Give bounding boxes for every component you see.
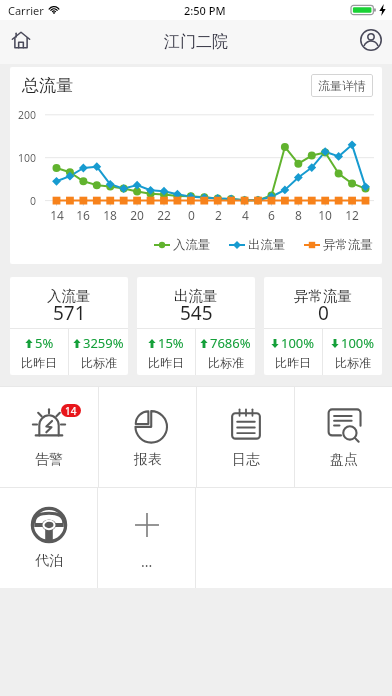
button[interactable]: Profile bbox=[350, 19, 392, 61]
button[interactable]: 流量详情 bbox=[311, 74, 373, 97]
staticText: 入流量 bbox=[173, 237, 211, 253]
staticText: 日志 bbox=[232, 451, 260, 469]
staticText: 江门二院 bbox=[164, 32, 228, 52]
staticText: 571 bbox=[53, 300, 86, 326]
button[interactable]: 14 bbox=[0, 387, 98, 487]
staticText: 20 bbox=[130, 207, 144, 223]
staticText: 报表 bbox=[134, 451, 162, 469]
staticText: 出流量 bbox=[174, 287, 218, 305]
staticText: 总流量 bbox=[22, 75, 73, 96]
staticText: 6 bbox=[268, 207, 275, 223]
staticText: 2:50 PM bbox=[184, 3, 226, 18]
staticText: 入流量 bbox=[47, 287, 91, 305]
staticText: 18 bbox=[103, 207, 117, 223]
button[interactable]: Home bbox=[0, 19, 42, 61]
staticText: 0 bbox=[30, 194, 37, 208]
staticText: 比标准 bbox=[335, 355, 371, 370]
staticText: 0 bbox=[318, 300, 329, 326]
staticText: 比标准 bbox=[81, 355, 117, 370]
staticText: 545 bbox=[180, 300, 213, 326]
staticText: 盘点 bbox=[330, 451, 358, 469]
staticText: 22 bbox=[157, 207, 171, 223]
staticText: 3259% bbox=[83, 334, 124, 352]
staticText: 流量详情 bbox=[318, 78, 366, 93]
staticText: ... bbox=[141, 552, 153, 571]
staticText: 比标准 bbox=[208, 355, 244, 370]
staticText: 14 bbox=[65, 404, 77, 417]
button[interactable]: 代泊 bbox=[0, 488, 97, 588]
staticText: 4 bbox=[242, 207, 249, 223]
staticText: 异常流量 bbox=[323, 237, 373, 253]
staticText: 比昨日 bbox=[275, 355, 311, 370]
button[interactable]: ... bbox=[98, 488, 195, 588]
staticText: 0 bbox=[188, 207, 195, 223]
staticText: 14 bbox=[50, 207, 64, 223]
staticText: 出流量 bbox=[248, 237, 286, 253]
staticText: 5% bbox=[35, 334, 54, 352]
button[interactable]: 异常流量 bbox=[264, 277, 382, 375]
button[interactable]: 日志 bbox=[197, 387, 294, 487]
staticText: 比昨日 bbox=[148, 355, 184, 370]
button[interactable]: 报表 bbox=[99, 387, 196, 487]
staticText: 15% bbox=[158, 334, 184, 352]
staticText: 100% bbox=[341, 334, 375, 352]
button[interactable]: 盘点 bbox=[295, 387, 392, 487]
staticText: 100% bbox=[281, 334, 315, 352]
staticText: 10 bbox=[318, 207, 332, 223]
staticText: 2 bbox=[215, 207, 222, 223]
staticText: 异常流量 bbox=[294, 287, 352, 305]
staticText: 比昨日 bbox=[21, 355, 57, 370]
staticText: 8 bbox=[295, 207, 302, 223]
staticText: 16 bbox=[76, 207, 90, 223]
staticText: Carrier bbox=[8, 3, 44, 18]
staticText: 告警 bbox=[35, 451, 63, 469]
button[interactable]: 出流量 bbox=[137, 277, 255, 375]
staticText: 7686% bbox=[210, 334, 251, 352]
staticText: 100 bbox=[18, 151, 37, 165]
staticText: 代泊 bbox=[35, 552, 63, 570]
staticText: 12 bbox=[345, 207, 359, 223]
staticText: 200 bbox=[18, 108, 37, 122]
button[interactable]: 入流量 bbox=[10, 277, 128, 375]
